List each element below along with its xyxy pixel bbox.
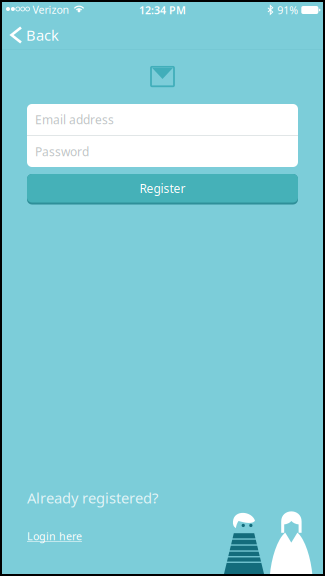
button[interactable]: Register — [27, 174, 298, 204]
staticText: Login here — [27, 529, 82, 543]
button[interactable]: Back — [0, 20, 71, 50]
staticText: Verizon — [33, 2, 70, 17]
staticText: 91% — [277, 3, 298, 17]
staticText: Password — [35, 143, 89, 159]
staticText: Already registered? — [27, 488, 158, 507]
button[interactable]: Login here — [24, 526, 85, 546]
staticText: Email address — [35, 111, 114, 127]
staticText: Register — [139, 180, 185, 196]
staticText: 12:34 PM — [139, 3, 186, 17]
staticText: Back — [26, 25, 59, 45]
